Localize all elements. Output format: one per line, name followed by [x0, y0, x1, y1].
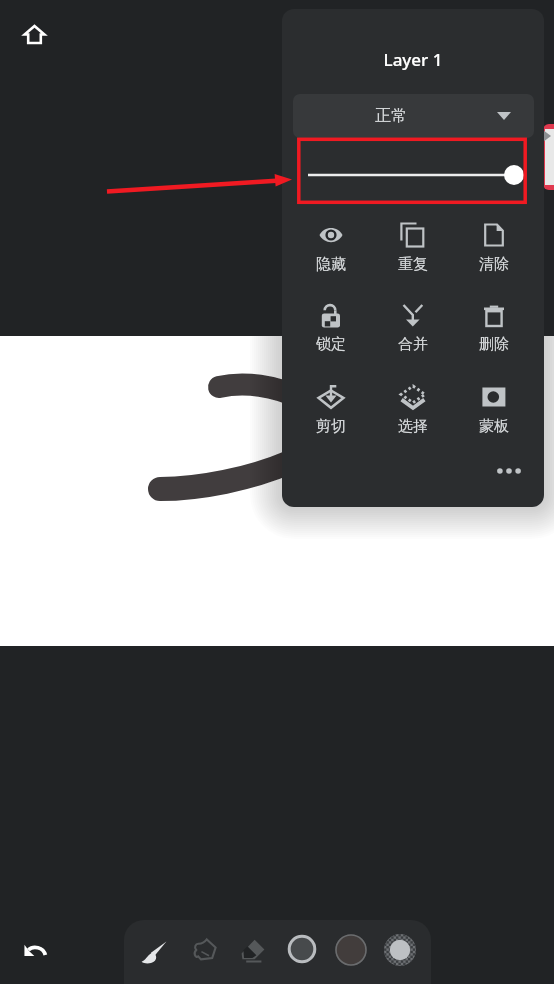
- button[interactable]: Hide layer: [294, 215, 368, 281]
- staticText: 正常: [375, 106, 407, 126]
- button[interactable]: Clear layer: [457, 215, 531, 281]
- staticText: 剪切: [316, 417, 346, 436]
- button[interactable]: Brush: [131, 931, 176, 976]
- button[interactable]: Select layer: [376, 377, 450, 443]
- staticText: 选择: [398, 417, 428, 436]
- staticText: 删除: [479, 335, 509, 354]
- staticText: 蒙板: [479, 417, 509, 436]
- staticText: 锁定: [316, 335, 346, 354]
- button[interactable]: Layer opacity: [296, 155, 530, 195]
- button[interactable]: Smudge: [182, 927, 227, 972]
- button[interactable]: Clip layer: [294, 377, 368, 443]
- button[interactable]: Home: [12, 12, 57, 57]
- button[interactable]: Eraser: [230, 928, 275, 973]
- staticText: Layer 1: [282, 48, 544, 71]
- staticText: 清除: [479, 255, 509, 274]
- button[interactable]: Lock layer: [294, 295, 368, 361]
- button[interactable]: Merge layer: [376, 295, 450, 361]
- button[interactable]: Delete layer: [457, 295, 531, 361]
- button[interactable]: Mask layer: [457, 377, 531, 443]
- button[interactable]: Colour: [378, 928, 422, 972]
- staticText: 隐藏: [316, 255, 346, 274]
- staticText: 重复: [398, 255, 428, 274]
- button[interactable]: Undo: [12, 927, 57, 972]
- staticText: 合并: [398, 335, 428, 354]
- button[interactable]: Duplicate layer: [376, 215, 450, 281]
- button[interactable]: Brush opacity: [329, 928, 373, 972]
- button[interactable]: More options: [491, 453, 527, 489]
- button[interactable]: Brush size: [280, 927, 324, 971]
- button[interactable]: 正常: [293, 94, 534, 138]
